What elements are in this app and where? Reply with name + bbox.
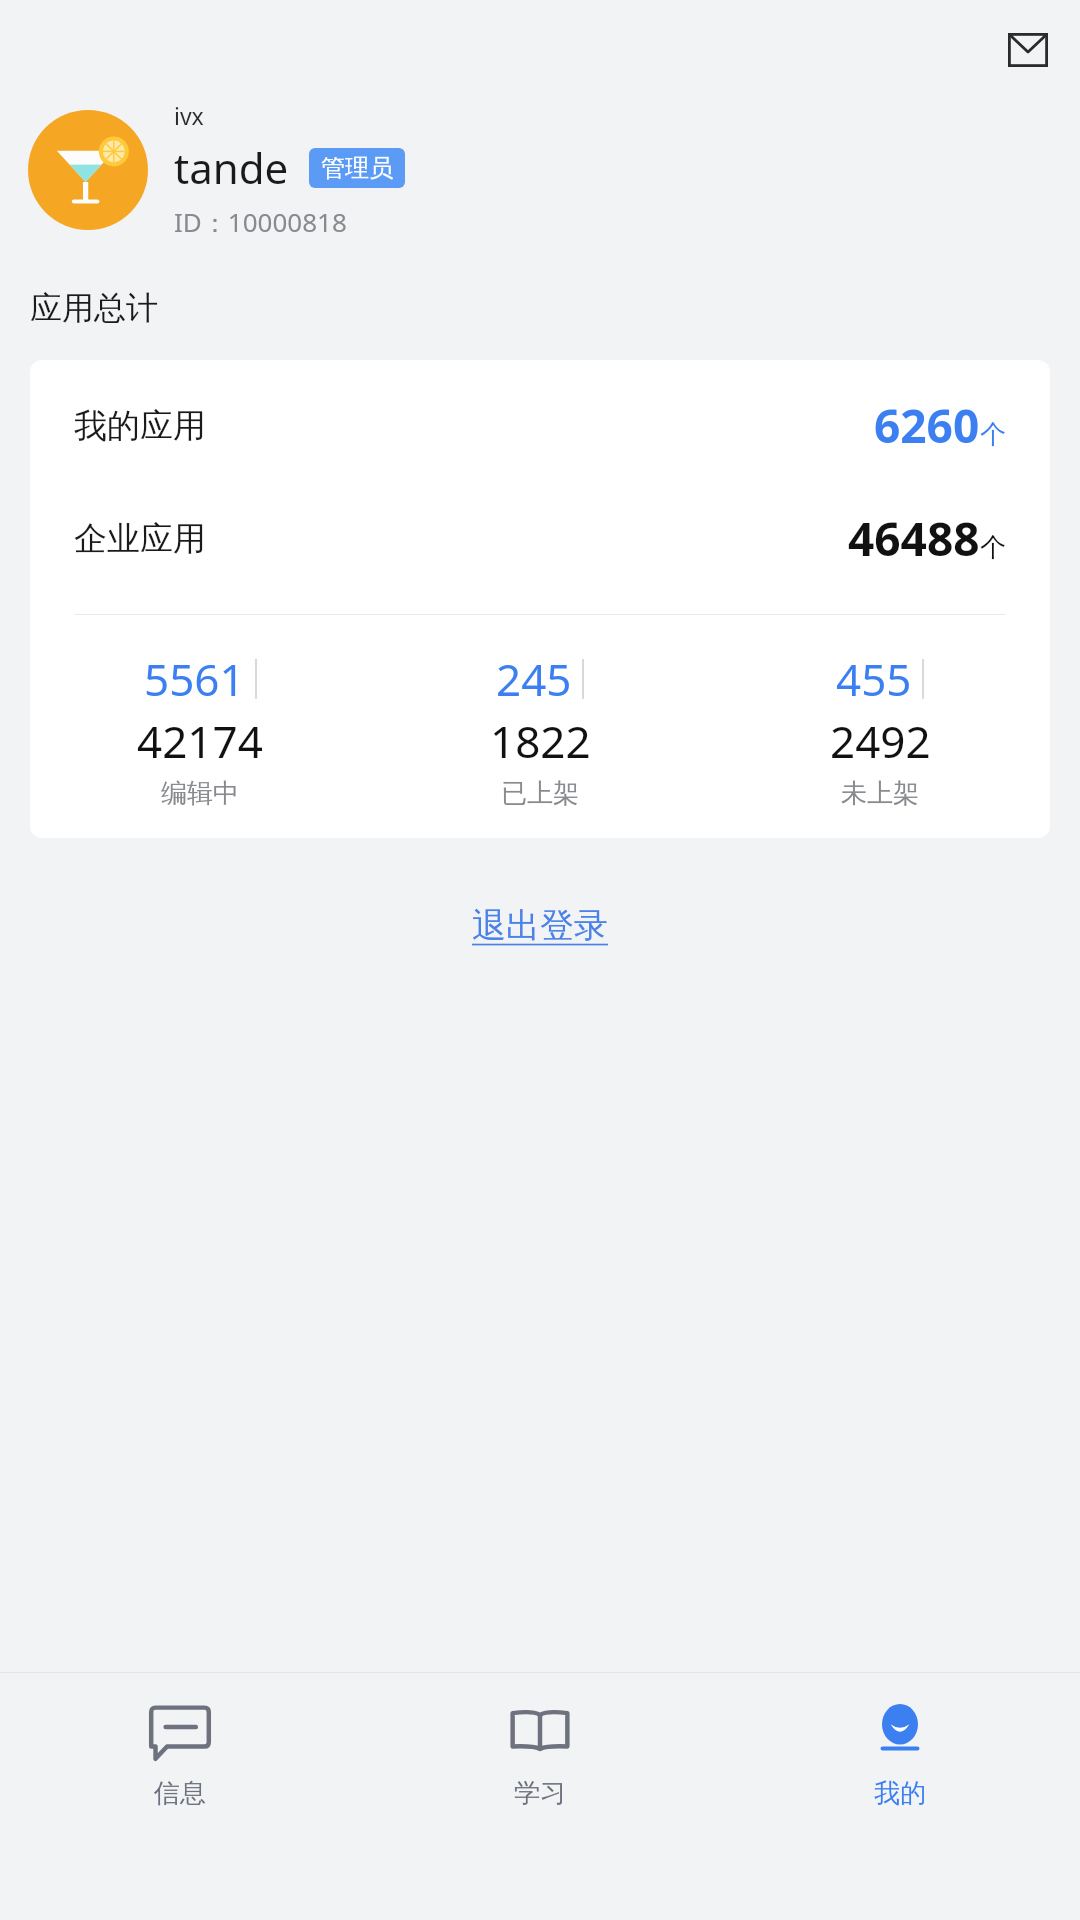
staticText: 编辑中 (161, 777, 239, 810)
button[interactable]: 退出登录 (442, 894, 638, 957)
button[interactable]: 企业应用 (30, 507, 1050, 570)
staticText: tande (174, 139, 289, 196)
staticText: 个 (980, 531, 1006, 564)
button[interactable]: 5561 (30, 649, 370, 810)
staticText: 1822 (490, 711, 591, 771)
staticText: 我的应用 (74, 405, 206, 447)
staticText: 5561 (144, 649, 245, 709)
button[interactable]: Messages (1000, 22, 1056, 78)
staticText: 6260 (874, 394, 980, 457)
staticText: ivx (174, 100, 204, 131)
button[interactable]: 学习 (360, 1673, 720, 1920)
staticText: 46488 (848, 507, 980, 570)
staticText: 个 (980, 418, 1006, 451)
staticText: 未上架 (841, 777, 919, 810)
button[interactable]: 我的 (720, 1673, 1080, 1920)
staticText: 管理员 (321, 153, 393, 183)
staticText: 2492 (830, 711, 931, 771)
button[interactable]: 我的应用 (30, 394, 1050, 457)
button[interactable]: ivx (28, 100, 1052, 240)
staticText: 企业应用 (74, 518, 206, 560)
staticText: 我的 (874, 1777, 926, 1810)
staticText: 退出登录 (472, 904, 608, 947)
staticText: 455 (836, 649, 912, 709)
staticText: 学习 (514, 1777, 566, 1810)
staticText: ID：10000818 (174, 204, 347, 240)
staticText: 42174 (137, 711, 263, 771)
button[interactable]: 455 (710, 649, 1050, 810)
button[interactable]: 信息 (0, 1673, 360, 1920)
button[interactable]: 245 (370, 649, 710, 810)
staticText: 信息 (154, 1777, 206, 1810)
staticText: 应用总计 (30, 288, 158, 328)
staticText: 已上架 (501, 777, 579, 810)
staticText: 245 (496, 649, 572, 709)
